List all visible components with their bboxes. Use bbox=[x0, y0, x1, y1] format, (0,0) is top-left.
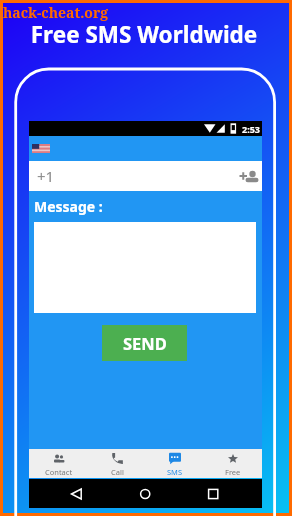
button[interactable]: SMS bbox=[146, 449, 204, 478]
other: Add contact bbox=[239, 169, 259, 183]
staticText: Call bbox=[111, 467, 124, 477]
staticText: SEND bbox=[123, 332, 167, 354]
button[interactable]: +1 bbox=[29, 161, 262, 191]
staticText: 2:53 bbox=[242, 123, 260, 135]
button[interactable]: Free bbox=[204, 449, 262, 478]
staticText: +1 bbox=[37, 166, 55, 186]
staticText: hack-cheat.org bbox=[3, 3, 109, 22]
button[interactable]: Call bbox=[88, 449, 146, 478]
staticText: Contact bbox=[45, 467, 73, 477]
button[interactable]: Contact bbox=[29, 449, 88, 478]
staticText: Free SMS Worldwide bbox=[0, 19, 290, 50]
staticText: SMS bbox=[167, 467, 183, 477]
button[interactable]: SEND bbox=[102, 325, 187, 361]
staticText: Message : bbox=[34, 197, 103, 216]
staticText: Free bbox=[225, 467, 241, 477]
